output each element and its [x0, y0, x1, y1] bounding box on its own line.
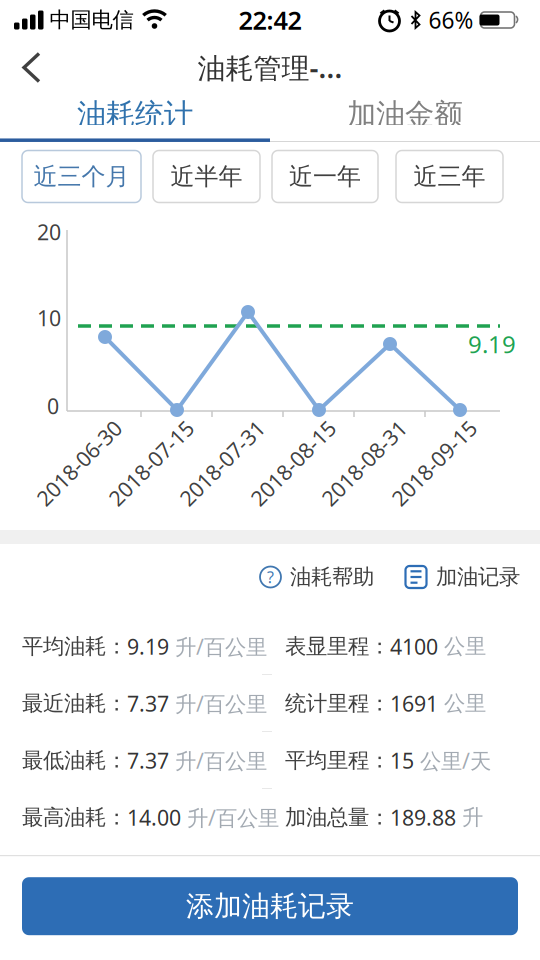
- button[interactable]: 近一年: [272, 150, 378, 202]
- button[interactable]: 加油金额: [270, 94, 540, 134]
- staticText: 近一年: [289, 162, 361, 191]
- staticText: 189.88: [390, 803, 456, 832]
- staticText: 15: [390, 746, 414, 775]
- staticText: 2018-08-15: [238, 449, 348, 477]
- staticText: 升/百公里: [169, 746, 267, 775]
- staticText: 加油总量：: [285, 804, 390, 831]
- button[interactable]: 添加油耗记录: [22, 877, 518, 935]
- button[interactable]: ?: [259, 564, 374, 590]
- staticText: 2018-08-31: [309, 449, 419, 477]
- button[interactable]: 近半年: [153, 150, 260, 202]
- staticText: 油耗管理-...: [197, 49, 342, 86]
- staticText: 22:42: [238, 3, 301, 37]
- staticText: 10: [37, 304, 61, 332]
- staticText: 公里: [438, 690, 486, 717]
- staticText: 表显里程：: [285, 633, 390, 660]
- staticText: 油耗帮助: [290, 564, 374, 590]
- staticText: 近三年: [413, 162, 485, 191]
- button[interactable]: 近三个月: [22, 150, 141, 202]
- staticText: 4100: [390, 632, 438, 661]
- staticText: 7.37: [127, 746, 169, 775]
- staticText: 加油金额: [347, 96, 463, 132]
- staticText: 最低油耗：: [22, 747, 127, 774]
- staticText: 油耗统计: [77, 96, 193, 132]
- staticText: 2018-06-30: [24, 449, 134, 477]
- staticText: 9.19: [127, 632, 169, 661]
- staticText: 升/百公里: [169, 632, 267, 661]
- staticText: 0: [47, 392, 59, 420]
- staticText: 近半年: [170, 162, 242, 191]
- staticText: 平均里程：: [285, 747, 390, 774]
- staticText: 1691: [390, 689, 438, 718]
- staticText: 66%: [428, 5, 473, 35]
- staticText: 升/百公里: [181, 803, 279, 832]
- staticText: 中国电信: [49, 7, 133, 33]
- staticText: 公里: [438, 633, 486, 660]
- staticText: 2018-07-31: [167, 449, 277, 477]
- staticText: 公里/天: [414, 746, 491, 775]
- staticText: 最高油耗：: [22, 804, 127, 831]
- staticText: 加油记录: [436, 564, 520, 590]
- staticText: 添加油耗记录: [186, 889, 354, 923]
- staticText: 2018-07-15: [96, 449, 206, 477]
- staticText: 升/百公里: [169, 689, 267, 718]
- button[interactable]: 油耗统计: [0, 94, 270, 134]
- staticText: 最近油耗：: [22, 690, 127, 717]
- staticText: 14.00: [127, 803, 181, 832]
- staticText: 7.37: [127, 689, 169, 718]
- staticText: 统计里程：: [285, 690, 390, 717]
- staticText: 平均油耗：: [22, 633, 127, 660]
- button[interactable]: 近三年: [396, 150, 503, 202]
- staticText: 9.19: [468, 328, 516, 360]
- button[interactable]: 加油记录: [374, 564, 520, 590]
- staticText: 20: [37, 218, 61, 246]
- staticText: ?: [267, 566, 274, 588]
- staticText: 升: [456, 804, 483, 831]
- staticText: 近三个月: [33, 162, 129, 191]
- staticText: 2018-09-15: [379, 449, 489, 477]
- button[interactable]: [0, 44, 42, 90]
